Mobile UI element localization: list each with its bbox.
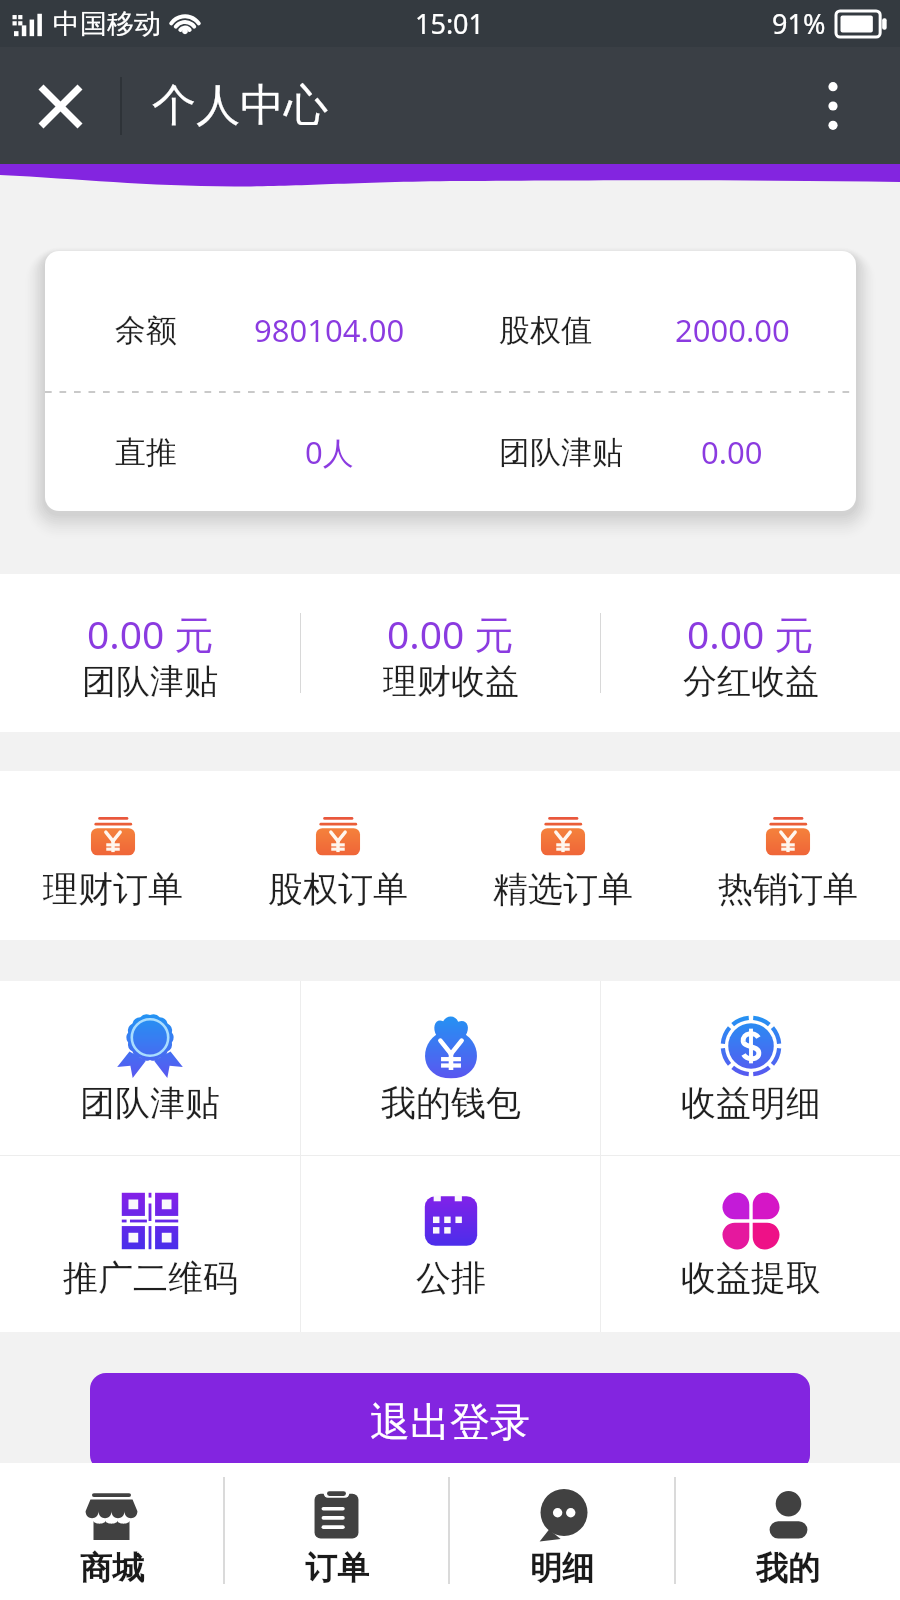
button[interactable]: 0.00 元 — [0, 574, 300, 732]
button[interactable]: 推广二维码 — [0, 1156, 300, 1332]
button[interactable]: 0.00 元 — [301, 574, 600, 732]
button[interactable]: 明细 — [450, 1463, 674, 1600]
staticText: 0人 — [305, 431, 354, 473]
staticText: 2000.00 — [675, 309, 790, 351]
staticText: 15:01 — [415, 5, 485, 42]
staticText: 余额 — [115, 311, 177, 350]
staticText: 分红收益 — [683, 660, 819, 703]
staticText: 我的钱包 — [381, 1081, 521, 1125]
button[interactable]: 理财订单 — [0, 771, 225, 940]
staticText: 收益明细 — [681, 1081, 821, 1125]
button[interactable]: 收益明细 — [601, 981, 900, 1155]
staticText: 中国移动 — [53, 7, 161, 41]
staticText: 个人中心 — [152, 78, 328, 133]
button[interactable]: 退出登录 — [90, 1373, 810, 1471]
button[interactable]: 余额 — [45, 251, 856, 511]
button[interactable]: 团队津贴 — [0, 981, 300, 1155]
button[interactable]: 订单 — [225, 1463, 448, 1600]
button[interactable]: 公排 — [301, 1156, 600, 1332]
button[interactable]: 收益提取 — [601, 1156, 900, 1332]
staticText: 热销订单 — [718, 867, 858, 911]
staticText: 0.00 元 — [87, 607, 214, 660]
staticText: 团队津贴 — [499, 433, 623, 472]
button[interactable]: 我的钱包 — [301, 981, 600, 1155]
staticText: 推广二维码 — [63, 1256, 238, 1300]
staticText: 980104.00 — [254, 309, 405, 351]
staticText: 0.00 元 — [387, 607, 514, 660]
button[interactable]: 股权订单 — [225, 771, 450, 940]
staticText: 公排 — [416, 1256, 486, 1300]
staticText: 0.00 — [701, 431, 763, 473]
staticText: 91% — [772, 5, 826, 42]
staticText: 精选订单 — [493, 867, 633, 911]
staticText: 股权订单 — [268, 867, 408, 911]
staticText: 直推 — [115, 433, 177, 472]
staticText: 我的 — [756, 1548, 820, 1588]
staticText: 商城 — [80, 1548, 144, 1588]
staticText: 团队津贴 — [82, 660, 218, 703]
staticText: 股权值 — [499, 311, 592, 350]
staticText: 收益提取 — [681, 1256, 821, 1300]
button[interactable]: 我的 — [676, 1463, 900, 1600]
button[interactable]: Close — [22, 68, 98, 144]
staticText: 订单 — [305, 1548, 369, 1588]
staticText: 团队津贴 — [80, 1081, 220, 1125]
button[interactable]: 精选订单 — [450, 771, 675, 940]
staticText: 理财订单 — [43, 867, 183, 911]
staticText: 明细 — [530, 1548, 594, 1588]
staticText: 0.00 元 — [687, 607, 814, 660]
button[interactable]: More options — [798, 71, 868, 141]
button[interactable]: 商城 — [0, 1463, 223, 1600]
button[interactable]: 热销订单 — [675, 771, 900, 940]
staticText: 理财收益 — [383, 660, 519, 703]
button[interactable]: 0.00 元 — [601, 574, 900, 732]
staticText: 退出登录 — [370, 1397, 530, 1447]
